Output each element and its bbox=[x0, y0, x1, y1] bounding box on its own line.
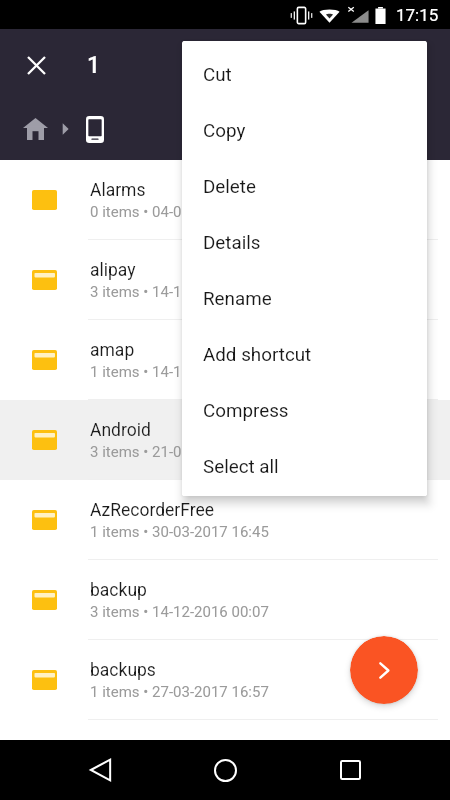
staticText: backup bbox=[90, 580, 147, 601]
staticText: 0 items • 04-07-2016 11:32 bbox=[90, 203, 269, 221]
button[interactable]: amap bbox=[0, 320, 450, 400]
staticText: 17:15 bbox=[396, 5, 439, 25]
button[interactable]: backup bbox=[0, 560, 450, 640]
staticText: Compress bbox=[203, 400, 289, 422]
button[interactable]: Recents bbox=[324, 744, 376, 796]
button[interactable]: Details bbox=[182, 215, 427, 271]
staticText: 1 items • 27-03-2017 16:57 bbox=[90, 683, 269, 701]
button[interactable]: Back bbox=[74, 744, 126, 796]
button[interactable]: Alarms bbox=[0, 160, 450, 240]
staticText: 1 bbox=[87, 52, 101, 79]
staticText: 1 items • 30-03-2017 16:45 bbox=[90, 523, 269, 541]
button[interactable]: backups bbox=[0, 640, 450, 720]
button[interactable]: Close bbox=[8, 37, 64, 93]
button[interactable]: Android bbox=[0, 400, 450, 480]
staticText: Delete bbox=[203, 176, 256, 198]
staticText: alipay bbox=[90, 260, 136, 281]
staticText: Rename bbox=[203, 288, 272, 310]
staticText: 1 items • 14-12-2016 10:22 bbox=[90, 363, 269, 381]
staticText: 3 items • 21-07-2016 09:14 bbox=[90, 443, 269, 461]
button[interactable]: Rename bbox=[182, 271, 427, 327]
staticText: 3 items • 14-12-2016 00:07 bbox=[90, 603, 269, 621]
staticText: AzRecorderFree bbox=[90, 500, 215, 521]
button[interactable]: alipay bbox=[0, 240, 450, 320]
staticText: Android bbox=[90, 420, 151, 441]
button[interactable]: Copy bbox=[182, 103, 427, 159]
button[interactable]: Paste bbox=[350, 636, 418, 704]
staticText: Alarms bbox=[90, 180, 146, 201]
button[interactable]: Add shortcut bbox=[182, 327, 427, 383]
button[interactable]: Compress bbox=[182, 383, 427, 439]
staticText: Select all bbox=[203, 456, 279, 478]
staticText: Copy bbox=[203, 120, 246, 142]
button[interactable]: Select all bbox=[182, 439, 427, 495]
button[interactable]: Delete bbox=[182, 159, 427, 215]
button[interactable]: AzRecorderFree bbox=[0, 480, 450, 560]
staticText: Add shortcut bbox=[203, 344, 312, 366]
staticText: 3 items • 14-12-2016 10:22 bbox=[90, 283, 269, 301]
staticText: Details bbox=[203, 232, 261, 254]
button[interactable]: Home bbox=[199, 744, 251, 796]
staticText: backups bbox=[90, 660, 156, 681]
staticText: Cut bbox=[203, 64, 232, 86]
staticText: amap bbox=[90, 340, 135, 361]
button[interactable]: Cut bbox=[182, 47, 427, 103]
